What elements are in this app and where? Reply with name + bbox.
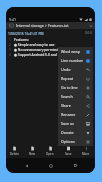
button[interactable]: Back [22, 161, 31, 170]
button[interactable]: Undo [58, 65, 93, 74]
button[interactable]: Rename [58, 110, 93, 119]
staticText: Save [65, 152, 72, 156]
button[interactable]: Word wrap [58, 47, 93, 56]
staticText: ● No unnecessary permissions that [14, 47, 71, 52]
staticText: Save as [61, 121, 74, 126]
button[interactable]: 1/06/2016 16:41:31 PM [6, 29, 95, 36]
button[interactable]: Go to line [58, 83, 93, 92]
button[interactable]: More [77, 144, 95, 158]
button[interactable]: Recents [71, 161, 80, 170]
staticText: 9:41 [9, 17, 17, 22]
staticText: Rename [61, 112, 76, 117]
staticText: Undo [61, 67, 71, 72]
button[interactable]: Delete [6, 144, 23, 158]
staticText: Share [61, 103, 71, 108]
button[interactable]: Search [58, 92, 93, 101]
staticText: Word wrap [61, 49, 80, 54]
button[interactable]: Share [58, 101, 93, 110]
button[interactable]: Internal storage > Features.txt [6, 22, 95, 29]
staticText: 3 [9, 48, 11, 52]
staticText: Delete [10, 152, 19, 156]
staticText: Search [61, 94, 73, 99]
staticText: 1 [9, 38, 11, 42]
staticText: ● Support Android 5.0 and newer [14, 52, 68, 57]
staticText: Internal storage > Features.txt [16, 23, 69, 28]
staticText: Go to line [61, 85, 78, 90]
button[interactable]: Save as [58, 119, 93, 128]
button[interactable]: Donate [58, 128, 93, 137]
staticText: Open [46, 152, 54, 156]
staticText: 1/06/2016 16:41:31 PM [8, 31, 44, 35]
staticText: Options [61, 139, 75, 144]
button[interactable]: Line number [58, 56, 93, 65]
button[interactable]: Repeat [58, 74, 93, 83]
staticText: 0:0:0 [85, 31, 92, 35]
staticText: More [82, 152, 90, 156]
staticText: Repeat [61, 76, 74, 81]
button[interactable]: Home [46, 161, 55, 170]
staticText: Line number [61, 58, 84, 63]
staticText: 4 [9, 53, 11, 57]
staticText: ● Simple and easy to use [14, 42, 55, 47]
button[interactable]: Open [41, 144, 59, 158]
staticText: 2 [9, 43, 11, 47]
button[interactable]: New [23, 144, 41, 158]
button[interactable]: More options [88, 23, 93, 28]
staticText: Donate [61, 130, 74, 135]
button[interactable]: Save [59, 144, 77, 158]
staticText: Features: [14, 37, 29, 42]
button[interactable]: Options [58, 137, 93, 146]
staticText: New [29, 152, 36, 156]
